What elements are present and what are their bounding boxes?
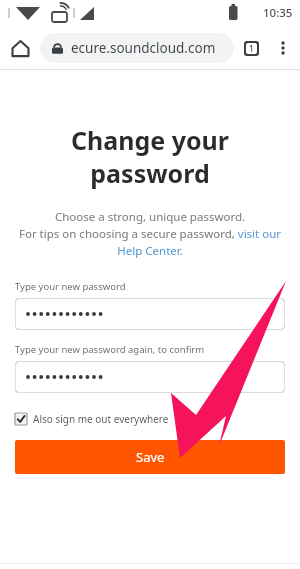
button[interactable] (15, 361, 285, 393)
button[interactable] (15, 298, 285, 330)
staticText: ecure.soundcloud.com (71, 39, 216, 57)
button[interactable]: More options (268, 33, 298, 63)
staticText: Type your new password (15, 280, 126, 293)
staticText: Change your password (15, 123, 285, 190)
button[interactable]: Tabs (234, 31, 268, 65)
staticText: 1 (249, 43, 254, 54)
button[interactable]: Also sign me out everywhere (15, 410, 169, 428)
button[interactable]: Choose a strong, unique password. For ti… (15, 209, 285, 258)
button[interactable]: Home (0, 28, 40, 68)
staticText: Also sign me out everywhere (33, 412, 169, 426)
staticText: 10:35 (263, 5, 293, 21)
staticText: Save (136, 448, 165, 466)
staticText: Type your new password again, to confirm (15, 343, 205, 356)
button[interactable]: Save (15, 440, 285, 474)
button[interactable]: ecure.soundcloud.com (40, 33, 234, 63)
